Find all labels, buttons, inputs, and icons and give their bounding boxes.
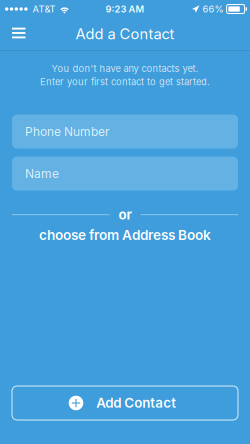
staticText: Name [25, 166, 59, 181]
staticText: 66% [203, 3, 224, 15]
staticText: Add a Contact [75, 25, 174, 43]
button[interactable]: Phone Number [12, 115, 238, 149]
staticText: Enter your first contact to get started. [40, 76, 210, 88]
staticText: Add Contact [96, 395, 176, 411]
staticText: AT&T [33, 3, 56, 15]
button[interactable]: Menu [0, 19, 35, 49]
button[interactable]: Add Contact [12, 386, 238, 420]
staticText: You don't have any contacts yet. [51, 63, 198, 74]
staticText: or [118, 207, 131, 223]
button[interactable]: Name [12, 157, 238, 191]
staticText: 9:23 AM [105, 3, 144, 15]
staticText: choose from Address Book [39, 227, 211, 243]
staticText: Phone Number [25, 124, 110, 139]
button[interactable]: choose from Address Book [29, 223, 221, 249]
